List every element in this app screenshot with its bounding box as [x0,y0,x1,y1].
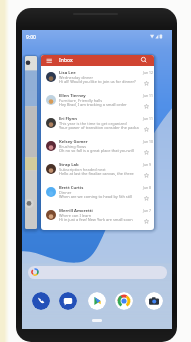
staticText: When are we coming to head by 5th still [59,194,133,199]
staticText: Jun 9 [143,162,151,167]
button[interactable]: Star conversation [144,81,149,86]
button[interactable]: Messages [59,292,77,310]
staticText: Oh no so fall is a great place that you … [59,148,134,153]
staticText: Jun 10 [143,139,153,144]
button[interactable]: Phone [32,292,50,310]
button[interactable]: Kelsey Gomer [41,135,154,158]
staticText: Inbox [59,57,73,64]
button[interactable]: Merrill Amoretti [41,204,154,227]
staticText: Where can I learn [59,213,92,218]
staticText: Hi in just a few! New York are small soo… [59,217,133,222]
button[interactable]: Eri Flynn [41,112,154,135]
staticText: Jun 8 [143,185,151,190]
staticText: Strap Lab [59,162,79,168]
staticText: Brett Curtis [59,185,84,191]
staticText: Jun 7 [143,208,151,213]
button[interactable] [25,56,37,229]
staticText: Kelsey Gomer [59,139,88,145]
staticText: Hello at last the finalize canvas, the t… [59,171,134,176]
staticText: Brushing flows [59,144,87,149]
button[interactable]: Star conversation [144,173,149,178]
button[interactable]: Open navigation menu [45,56,53,64]
staticText: Furniture, Friendly halls [59,98,103,103]
button[interactable]: Chrome [115,292,133,310]
button[interactable]: Search [140,56,148,64]
button[interactable]: Star conversation [144,150,149,155]
staticText: Your power of transition consider the pa… [59,125,139,130]
staticText: Ellen Tierney [59,93,86,99]
staticText: Merrill Amoretti [59,208,93,214]
staticText: Hey Brad, I am tracking a small order [59,102,127,107]
button[interactable]: Camera [145,292,163,310]
staticText: Wednesday dinner [59,75,94,80]
button[interactable]: Play Store [88,292,106,310]
staticText: Hi all! Would you like to join us for di… [59,79,136,84]
button[interactable]: Brett Curtis [41,181,154,204]
staticText: Jun 11 [143,116,153,121]
button[interactable]: Star conversation [144,196,149,201]
button[interactable]: Strap Lab [41,158,154,181]
button[interactable]: Star conversation [144,127,149,132]
button[interactable]: Star conversation [144,219,149,224]
staticText: This year is the time to get organized [59,121,127,126]
staticText: Subscription headed next [59,167,106,172]
staticText: Jun 11 [143,93,153,98]
staticText: Jun 12 [143,70,153,75]
staticText: 9:00 [26,34,36,41]
button[interactable]: Ellen Tierney [41,89,154,112]
button[interactable]: Star conversation [144,104,149,109]
button[interactable] [28,266,167,279]
staticText: Eri Flynn [59,116,77,122]
staticText: Dinner [59,190,72,195]
button[interactable]: Lisa Lee [41,66,154,89]
staticText: Lisa Lee [59,70,76,76]
